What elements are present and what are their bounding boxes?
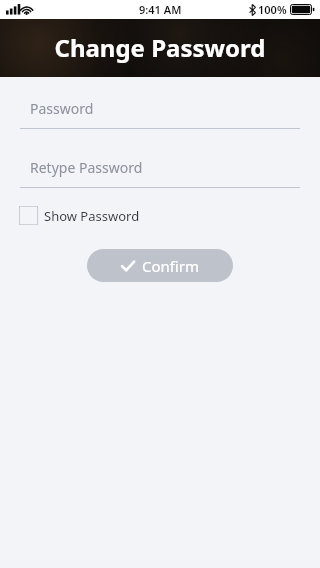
button[interactable]: Confirm bbox=[87, 249, 233, 282]
button[interactable]: Password bbox=[20, 95, 300, 129]
button[interactable]: Retype Password bbox=[20, 154, 300, 188]
staticText: 9:41 AM bbox=[139, 2, 182, 17]
staticText: Show Password bbox=[44, 207, 140, 225]
staticText: Change Password bbox=[54, 31, 266, 64]
staticText: Confirm bbox=[142, 256, 200, 276]
staticText: Retype Password bbox=[30, 158, 143, 177]
staticText: 100% bbox=[258, 2, 287, 17]
staticText: Password bbox=[30, 99, 94, 118]
button[interactable]: Show Password bbox=[19, 204, 140, 227]
